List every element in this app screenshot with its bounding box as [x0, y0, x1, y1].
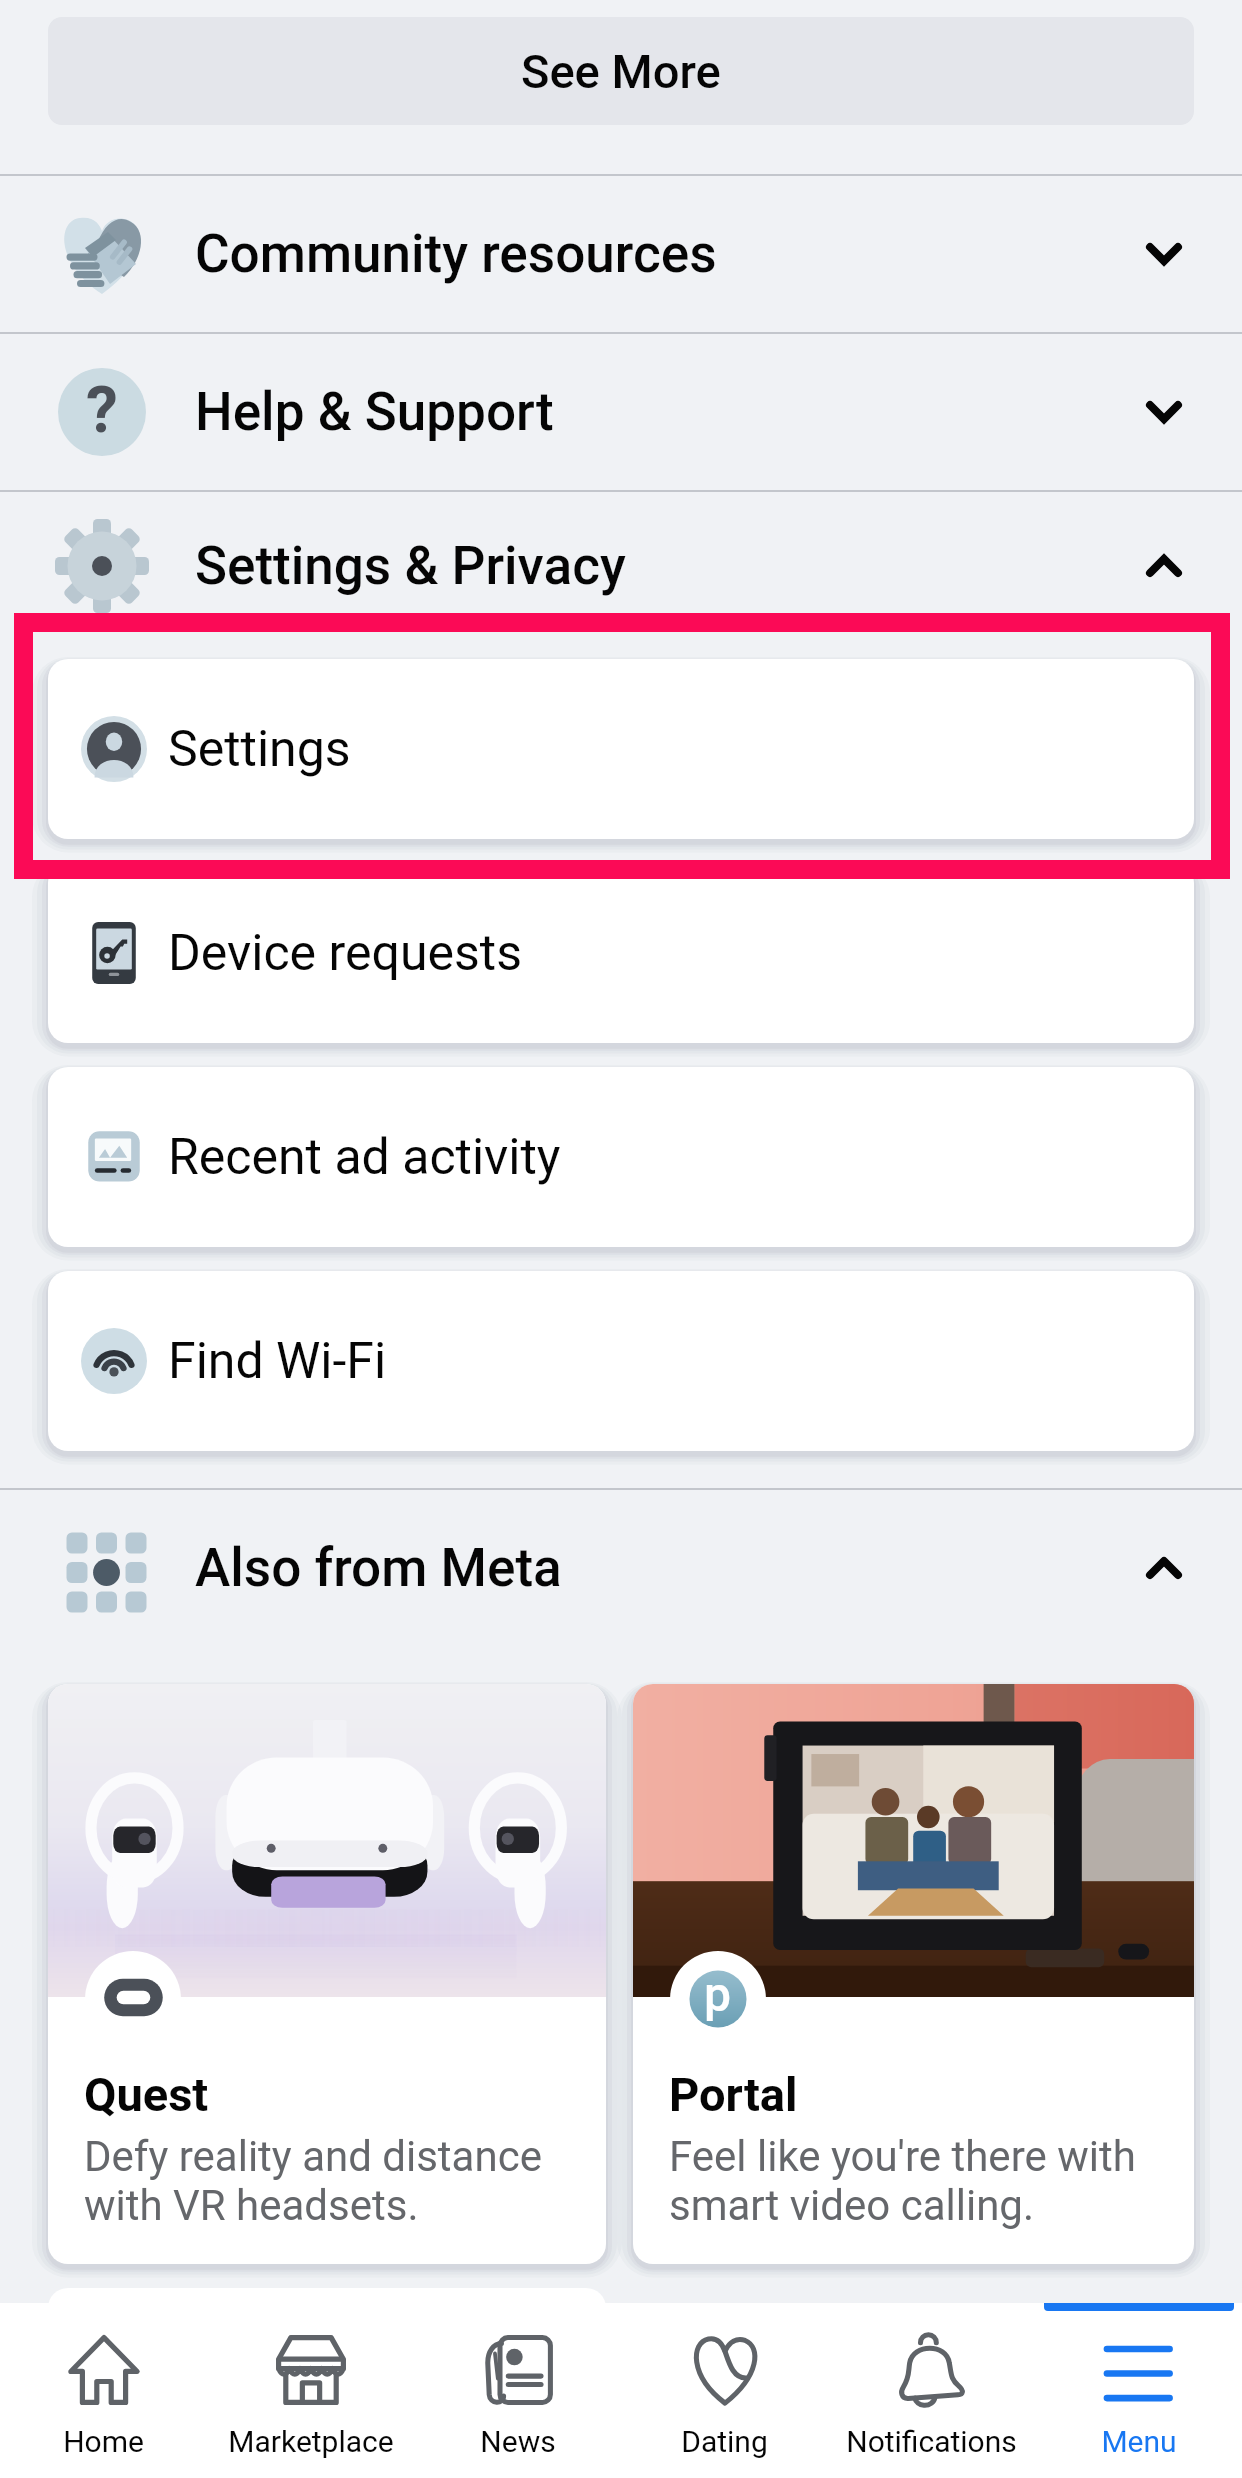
button[interactable]: Notifications — [828, 2303, 1035, 2478]
button[interactable]: Marketplace — [207, 2303, 414, 2478]
button[interactable]: Menu — [1035, 2303, 1242, 2478]
button[interactable]: Settings — [48, 659, 1194, 839]
staticText: Device requests — [168, 924, 522, 983]
staticText: Portal — [669, 2067, 798, 2122]
other: Notifications — [896, 2334, 968, 2406]
button[interactable]: Portal — [633, 1684, 1194, 2264]
staticText: Quest — [84, 2067, 209, 2122]
staticText: Settings — [168, 720, 351, 779]
other: Home — [68, 2334, 140, 2406]
staticText: Defy reality and distance with VR headse… — [84, 2132, 542, 2230]
staticText: News — [480, 2424, 556, 2459]
button[interactable]: ? — [0, 333, 1242, 491]
staticText: Dating — [681, 2424, 768, 2459]
staticText: Recent ad activity — [168, 1128, 561, 1187]
staticText: Feel like you're there with smart video … — [669, 2132, 1136, 2230]
button[interactable]: Home — [0, 2303, 207, 2478]
staticText: ? — [86, 373, 118, 448]
staticText: Marketplace — [228, 2424, 394, 2459]
staticText: Menu — [1101, 2424, 1177, 2459]
staticText: Community resources — [195, 223, 717, 285]
button[interactable]: See More — [48, 17, 1194, 125]
button[interactable]: Recent ad activity — [48, 1067, 1194, 1247]
button[interactable]: Also from Meta — [0, 1489, 1242, 1647]
button[interactable]: Community resources — [0, 175, 1242, 333]
staticText: Home — [63, 2424, 144, 2459]
button[interactable]: Quest — [48, 1684, 606, 2264]
button[interactable]: Dating — [621, 2303, 828, 2478]
other: Menu — [1103, 2334, 1175, 2406]
staticText: Notifications — [846, 2424, 1017, 2459]
other: Marketplace — [275, 2334, 347, 2406]
other: News — [482, 2334, 554, 2406]
staticText: Help & Support — [195, 381, 554, 443]
button[interactable]: Device requests — [48, 863, 1194, 1043]
staticText: See More — [521, 44, 721, 99]
button[interactable]: Find Wi-Fi — [48, 1271, 1194, 1451]
button[interactable]: News — [414, 2303, 621, 2478]
staticText: p — [704, 1966, 732, 2022]
other: Dating — [689, 2334, 761, 2406]
staticText: Find Wi-Fi — [168, 1332, 387, 1391]
button[interactable]: Settings & Privacy — [0, 491, 1242, 641]
staticText: Also from Meta — [195, 1537, 562, 1599]
staticText: Settings & Privacy — [195, 535, 626, 597]
